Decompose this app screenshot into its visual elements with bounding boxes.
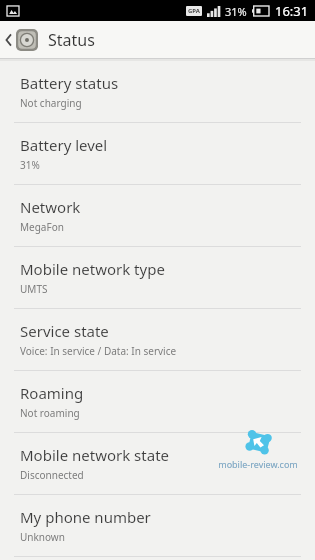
staticText: MegaFon	[20, 220, 64, 234]
staticText: Disconnected	[20, 468, 84, 482]
button[interactable]: Battery level	[0, 123, 315, 184]
staticText: 16:31	[275, 2, 309, 20]
staticText: My phone number	[20, 507, 151, 527]
button[interactable]: Network	[0, 185, 315, 246]
button[interactable]: Back to Status	[0, 21, 315, 58]
staticText: Battery status	[20, 73, 119, 93]
button[interactable]: Battery status	[0, 61, 315, 122]
staticText: UMTS	[20, 282, 48, 296]
staticText: Voice: In service / Data: In service	[20, 344, 177, 358]
staticText: Mobile network type	[20, 259, 165, 279]
button[interactable]: Mobile network state	[0, 433, 315, 494]
staticText: Battery level	[20, 135, 108, 155]
staticText: Not roaming	[20, 406, 80, 420]
button[interactable]: My phone number	[0, 495, 315, 556]
staticText: Unknown	[20, 530, 65, 544]
staticText: GPA	[188, 7, 200, 15]
staticText: Network	[20, 197, 81, 217]
staticText: Roaming	[20, 383, 84, 403]
staticText: Service state	[20, 321, 109, 341]
staticText: mobile-review.com	[218, 458, 298, 470]
staticText: Mobile network state	[20, 445, 170, 465]
staticText: 31%	[20, 158, 40, 172]
button[interactable]: Service state	[0, 309, 315, 370]
staticText: Not charging	[20, 96, 82, 110]
button[interactable]: Roaming	[0, 371, 315, 432]
button[interactable]: Mobile network type	[0, 247, 315, 308]
staticText: 31%	[225, 4, 247, 19]
staticText: Status	[48, 29, 95, 51]
